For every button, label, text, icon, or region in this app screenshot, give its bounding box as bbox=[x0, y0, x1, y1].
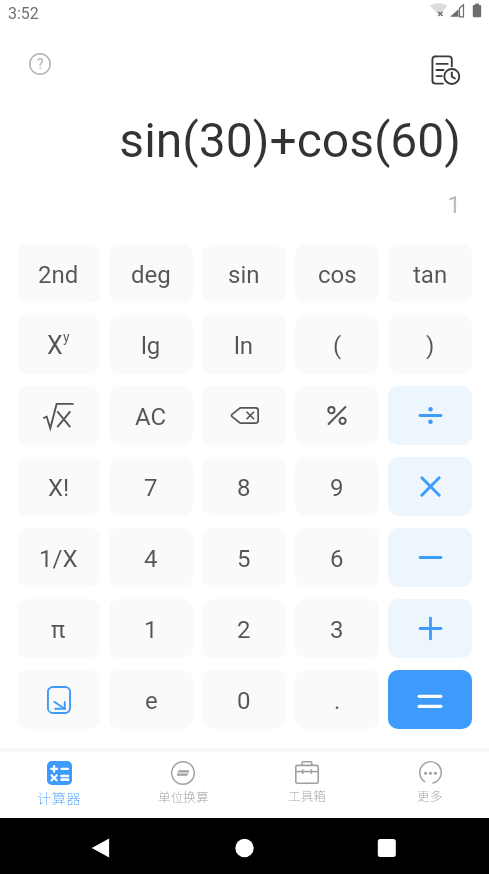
other: Percent bbox=[327, 406, 347, 425]
staticText: 1/X bbox=[39, 545, 78, 573]
staticText: ) bbox=[426, 332, 435, 360]
button[interactable]: 1 bbox=[109, 599, 193, 658]
staticText: 更多 bbox=[417, 786, 443, 804]
staticText: π bbox=[51, 616, 66, 644]
button[interactable]: Percent bbox=[295, 386, 379, 445]
staticText: 9 bbox=[330, 474, 344, 502]
button[interactable]: lg bbox=[109, 315, 193, 374]
button[interactable]: 0 bbox=[202, 670, 286, 729]
staticText: sin bbox=[228, 261, 260, 289]
button[interactable]: 9 bbox=[295, 457, 379, 516]
button[interactable]: sin bbox=[202, 244, 286, 303]
button[interactable]: 3 bbox=[295, 599, 379, 658]
button[interactable]: History bbox=[425, 50, 465, 90]
staticText: 2nd bbox=[38, 261, 79, 289]
other: Delete bbox=[230, 407, 259, 424]
staticText: 7 bbox=[144, 474, 158, 502]
button[interactable]: X! bbox=[17, 457, 100, 516]
button[interactable] bbox=[388, 599, 472, 658]
staticText: ( bbox=[333, 332, 342, 360]
button[interactable] bbox=[388, 670, 472, 729]
staticText: 工具箱 bbox=[288, 786, 327, 804]
staticText: 3:52 bbox=[8, 4, 39, 23]
staticText: 2 bbox=[237, 616, 251, 644]
button[interactable]: X bbox=[17, 315, 100, 374]
staticText: lg bbox=[141, 332, 161, 360]
button[interactable]: tan bbox=[388, 244, 472, 303]
button[interactable]: 4 bbox=[109, 528, 193, 587]
staticText: AC bbox=[135, 403, 167, 431]
button[interactable]: ( bbox=[295, 315, 379, 374]
staticText: ? bbox=[37, 56, 44, 72]
button[interactable]: 2nd bbox=[17, 244, 100, 303]
button[interactable]: 单位换算 bbox=[122, 747, 244, 805]
other: Square root bbox=[43, 402, 74, 429]
staticText: 5 bbox=[237, 545, 251, 573]
button[interactable]: 8 bbox=[202, 457, 286, 516]
button[interactable]: 2 bbox=[202, 599, 286, 658]
staticText: y bbox=[63, 329, 70, 345]
button[interactable]: Help bbox=[24, 48, 56, 80]
staticText: 1 bbox=[447, 191, 461, 219]
button[interactable]: 1/X bbox=[17, 528, 100, 587]
staticText: 0 bbox=[237, 687, 251, 715]
button[interactable]: 7 bbox=[109, 457, 193, 516]
button[interactable]: 计算器 bbox=[0, 747, 120, 808]
staticText: tan bbox=[413, 261, 448, 289]
other: Insert bbox=[47, 686, 71, 714]
button[interactable]: 更多 bbox=[369, 747, 489, 804]
button[interactable]: Delete bbox=[202, 386, 286, 445]
button[interactable]: AC bbox=[109, 386, 193, 445]
button[interactable] bbox=[388, 457, 472, 516]
staticText: sin(30)+cos(60) bbox=[119, 112, 461, 168]
staticText: 8 bbox=[237, 474, 251, 502]
staticText: . bbox=[334, 687, 341, 715]
staticText: 计算器 bbox=[37, 787, 81, 808]
button[interactable] bbox=[388, 528, 472, 587]
staticText: 1 bbox=[144, 616, 158, 644]
staticText: deg bbox=[131, 261, 171, 289]
button[interactable]: Square root bbox=[17, 386, 100, 445]
staticText: 3 bbox=[330, 616, 344, 644]
button[interactable]: e bbox=[109, 670, 193, 729]
button[interactable]: π bbox=[17, 599, 100, 658]
button[interactable] bbox=[388, 386, 472, 445]
button[interactable]: . bbox=[295, 670, 379, 729]
button[interactable]: ) bbox=[388, 315, 472, 374]
staticText: X! bbox=[48, 474, 70, 502]
staticText: 6 bbox=[330, 545, 344, 573]
button[interactable]: cos bbox=[295, 244, 379, 303]
button[interactable]: deg bbox=[109, 244, 193, 303]
staticText: cos bbox=[318, 261, 357, 289]
button[interactable]: 5 bbox=[202, 528, 286, 587]
staticText: ln bbox=[234, 332, 254, 360]
button[interactable]: 工具箱 bbox=[246, 747, 368, 804]
staticText: e bbox=[145, 687, 158, 715]
button[interactable]: Insert bbox=[17, 670, 100, 729]
staticText: 单位换算 bbox=[158, 787, 209, 805]
staticText: X bbox=[47, 331, 63, 360]
button[interactable]: 6 bbox=[295, 528, 379, 587]
button[interactable]: ln bbox=[202, 315, 286, 374]
staticText: 4 bbox=[144, 545, 158, 573]
